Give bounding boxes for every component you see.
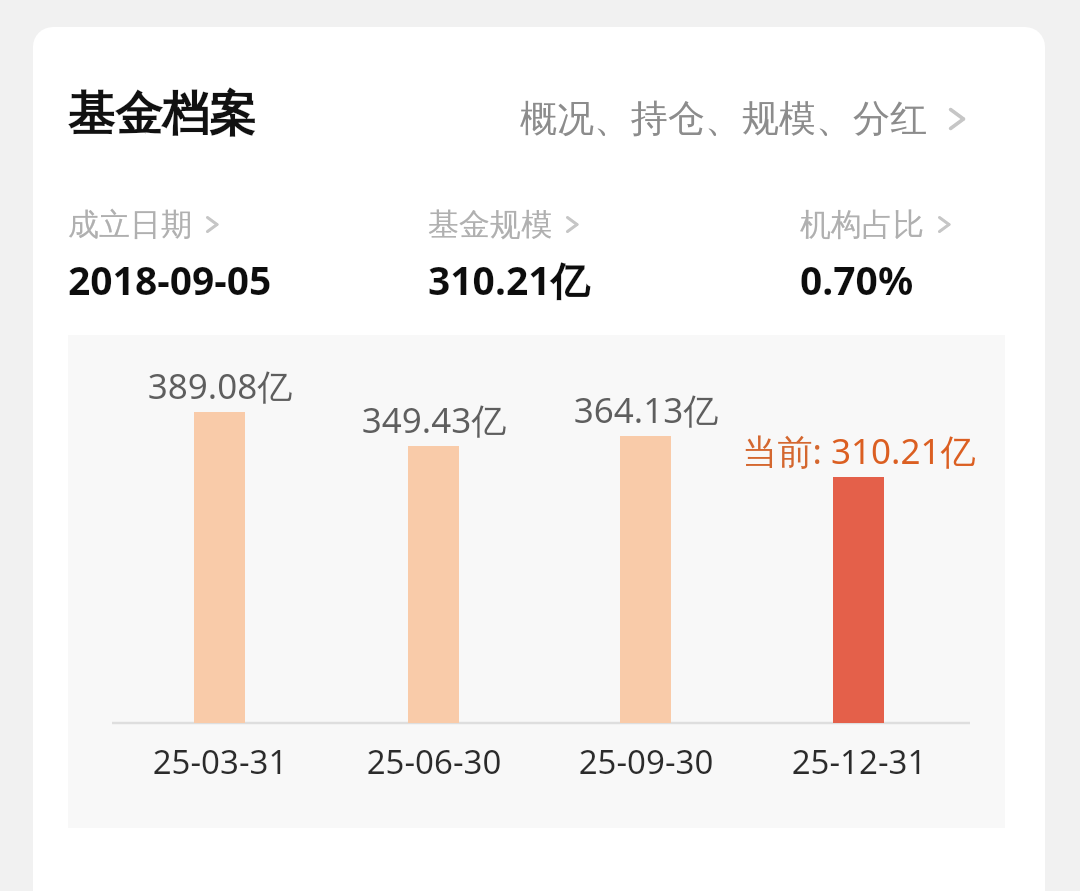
staticText: 25-12-31: [739, 739, 979, 784]
staticText: 基金规模: [428, 205, 552, 244]
button[interactable]: 概况、持仓、规模、分红: [520, 95, 973, 142]
button[interactable]: 基金档案: [68, 85, 256, 144]
button[interactable]: 25-03-31: [100, 739, 340, 784]
staticText: 389.08亿: [100, 362, 340, 410]
staticText: 当前: 310.21亿: [689, 427, 1029, 475]
staticText: 概况、持仓、规模、分红: [520, 95, 927, 142]
staticText: 0.70%: [800, 253, 914, 306]
staticText: 349.43亿: [314, 396, 554, 444]
button[interactable]: 机构占比: [800, 205, 956, 306]
button[interactable]: 25-06-30: [314, 739, 554, 784]
staticText: 25-09-30: [526, 739, 766, 784]
staticText: 364.13亿: [526, 386, 766, 434]
staticText: 310.21亿: [428, 253, 590, 306]
staticText: 机构占比: [800, 205, 924, 244]
staticText: 2018-09-05: [68, 253, 272, 306]
button[interactable]: 25-12-31: [739, 739, 979, 784]
staticText: 25-06-30: [314, 739, 554, 784]
button[interactable]: 成立日期: [68, 205, 272, 306]
button[interactable]: 25-09-30: [526, 739, 766, 784]
staticText: 25-03-31: [100, 739, 340, 784]
button[interactable]: 基金规模: [428, 205, 590, 306]
staticText: 成立日期: [68, 205, 192, 244]
